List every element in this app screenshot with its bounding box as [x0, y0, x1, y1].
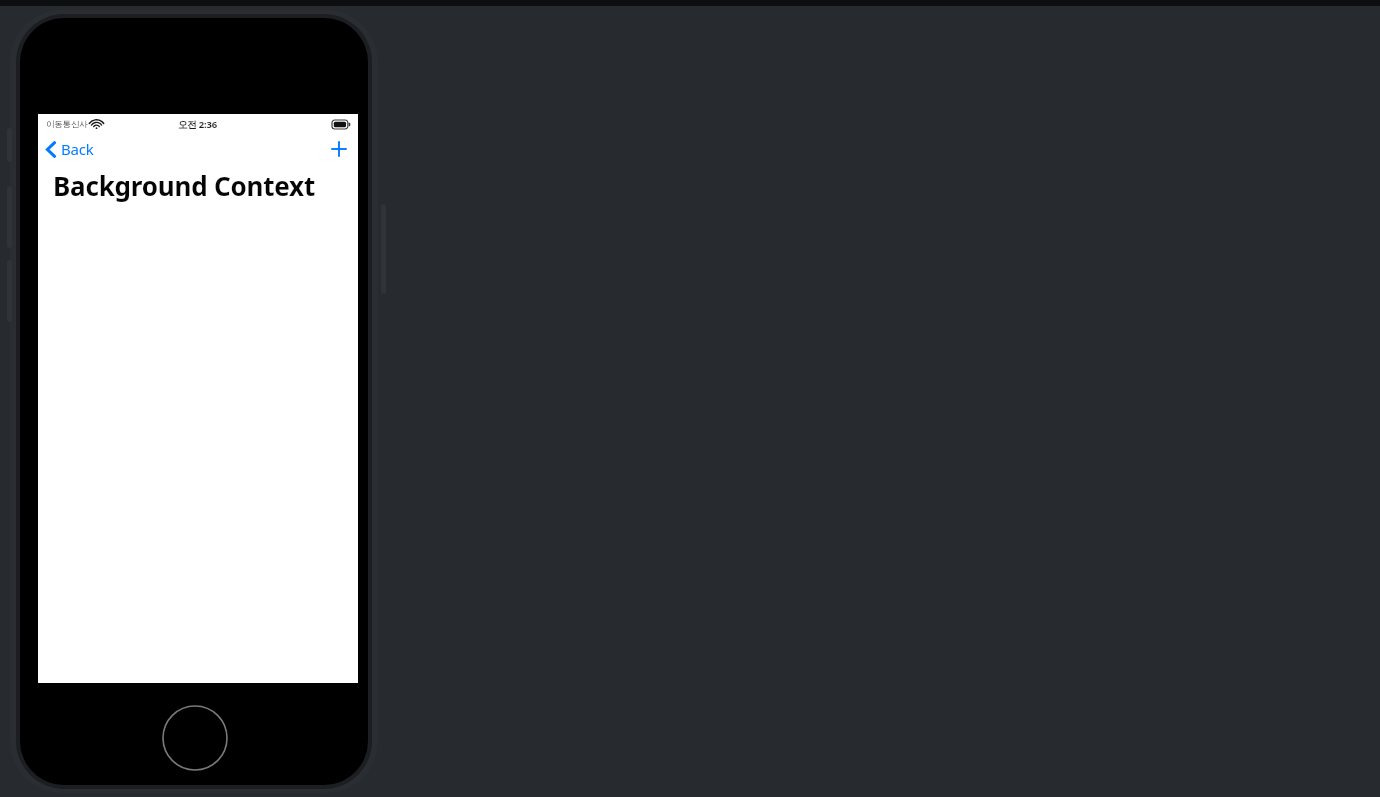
staticText: 오전 2:36	[178, 118, 218, 131]
button[interactable]: Add	[320, 136, 358, 162]
staticText: Background Context	[53, 168, 316, 203]
staticText: 이동통신사	[46, 119, 88, 130]
staticText: Back	[61, 139, 94, 159]
button[interactable]: Back	[38, 135, 102, 163]
